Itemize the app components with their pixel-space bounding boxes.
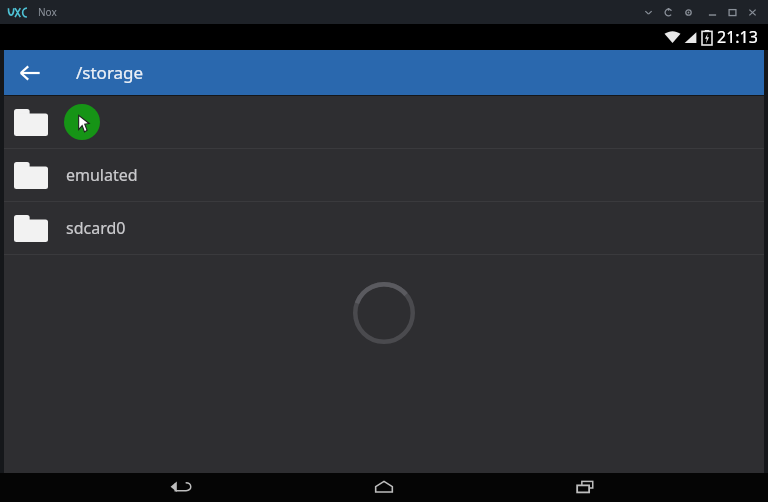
- button[interactable]: gear: [678, 1, 698, 23]
- button[interactable]: Home: [357, 473, 411, 502]
- staticText: /storage: [76, 61, 144, 84]
- staticText: ..: [66, 111, 75, 133]
- button[interactable]: min: [702, 1, 722, 23]
- button[interactable]: Back: [4, 50, 56, 95]
- staticText: 21:13: [717, 26, 758, 48]
- staticText: sdcard0: [66, 217, 126, 239]
- button[interactable]: Back: [155, 473, 209, 502]
- button[interactable]: max: [722, 1, 742, 23]
- button[interactable]: close: [742, 1, 762, 23]
- button[interactable]: refresh: [658, 1, 678, 23]
- button[interactable]: emulated: [4, 149, 764, 201]
- staticText: emulated: [66, 164, 138, 186]
- button[interactable]: chev: [638, 1, 658, 23]
- staticText: Nox: [38, 5, 57, 19]
- button[interactable]: sdcard0: [4, 202, 764, 254]
- button[interactable]: Recent apps: [559, 473, 613, 502]
- button[interactable]: ..: [4, 96, 764, 148]
